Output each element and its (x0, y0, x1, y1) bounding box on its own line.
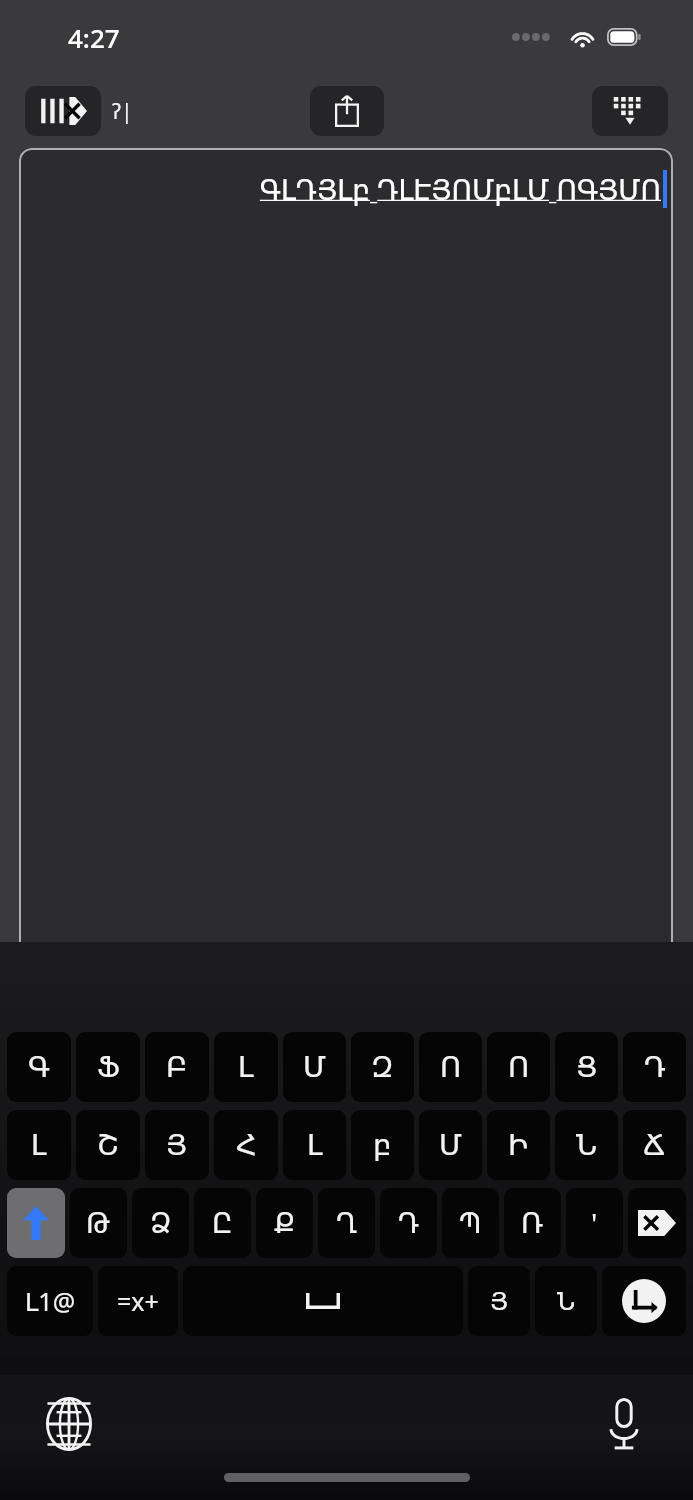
staticText: Գ (28, 1050, 50, 1084)
staticText: ' (591, 1204, 598, 1242)
staticText: Զ (371, 1050, 394, 1084)
staticText: =x+ (117, 1284, 159, 1318)
button[interactable]: Թ (70, 1188, 127, 1258)
button[interactable]: Ձ (132, 1188, 189, 1258)
button[interactable]: Shift (7, 1188, 65, 1258)
button[interactable]: Զ (351, 1032, 414, 1102)
staticText: Ն (576, 1128, 598, 1162)
staticText: ʔ| (112, 97, 133, 126)
button[interactable]: Հ (214, 1110, 278, 1180)
button[interactable]: Շ (76, 1110, 140, 1180)
button[interactable]: Ֆ (76, 1032, 140, 1102)
button[interactable]: Բ (145, 1032, 209, 1102)
staticText: Լ (238, 1050, 254, 1084)
button[interactable]: Դ (623, 1032, 686, 1102)
button[interactable]: Hide keyboard (592, 86, 668, 136)
staticText: Բ (166, 1050, 188, 1084)
button[interactable]: Ն (555, 1110, 618, 1180)
button[interactable]: Backspace (628, 1188, 686, 1258)
staticText: Ն (557, 1287, 576, 1316)
staticText: Մ (303, 1050, 326, 1084)
button[interactable]: Ի (487, 1110, 550, 1180)
button[interactable]: =x+ (98, 1266, 178, 1336)
button[interactable]: բ (351, 1110, 414, 1180)
button[interactable]: Լ1@ (7, 1266, 93, 1336)
button[interactable]: Մ (283, 1032, 346, 1102)
staticText: Լ1@ (25, 1284, 76, 1318)
staticText: Հ (236, 1128, 257, 1162)
button[interactable]: Ն (535, 1266, 597, 1336)
button[interactable]: Լ (214, 1032, 278, 1102)
staticText: Թ (86, 1207, 111, 1240)
button[interactable]: Ռ (504, 1188, 561, 1258)
staticText: Ձ (150, 1207, 172, 1240)
button[interactable]: Ո (419, 1032, 482, 1102)
button[interactable]: Ղ (318, 1188, 375, 1258)
button[interactable]: Ք (256, 1188, 313, 1258)
staticText: Մ (439, 1128, 462, 1162)
button[interactable]: Գ (7, 1032, 71, 1102)
button[interactable]: Մ (419, 1110, 482, 1180)
staticText: Յ (490, 1287, 509, 1316)
staticText: Լ (307, 1128, 323, 1162)
staticText: Շ (97, 1128, 119, 1162)
button[interactable]: Ց (555, 1032, 618, 1102)
button[interactable]: Ո (487, 1032, 550, 1102)
button[interactable]: Clear text (25, 86, 101, 136)
staticText: Ը (212, 1207, 233, 1240)
button[interactable]: Յ (468, 1266, 530, 1336)
staticText: Դ (644, 1050, 666, 1084)
staticText: Ռ (521, 1207, 544, 1240)
staticText: Ց (576, 1050, 598, 1084)
staticText: բ (373, 1128, 392, 1162)
button[interactable]: Voice input (591, 1391, 657, 1457)
staticText: Ո (508, 1050, 530, 1084)
staticText: Ի (508, 1128, 529, 1162)
button[interactable]: Ը (194, 1188, 251, 1258)
staticText: Ղ (336, 1207, 358, 1240)
button[interactable]: Պ (442, 1188, 499, 1258)
button[interactable]: Յ (145, 1110, 209, 1180)
staticText: Ֆ (97, 1050, 120, 1084)
button[interactable]: Լ (7, 1110, 71, 1180)
staticText: Յ (166, 1128, 188, 1162)
button[interactable]: ' (566, 1188, 623, 1258)
staticText: Ճ (643, 1128, 666, 1162)
button[interactable]: Ճ (623, 1110, 686, 1180)
staticText: Դ (398, 1207, 420, 1240)
staticText: Ո (440, 1050, 462, 1084)
button[interactable]: Change language (36, 1391, 102, 1457)
staticText: 4:27 (68, 20, 120, 55)
button[interactable]: Լ (283, 1110, 346, 1180)
staticText: Լ (31, 1128, 47, 1162)
button[interactable]: Enter (602, 1266, 686, 1336)
button[interactable]: Share (310, 86, 384, 136)
button[interactable]: Space (183, 1266, 463, 1336)
staticText: Պ (459, 1207, 482, 1240)
staticText: Ք (274, 1207, 296, 1240)
staticText: ԳԼԴՅԼբ ԴԼԷՅՈՄբԼՄ ՈԳՅՄՈ (259, 170, 661, 208)
button[interactable]: Դ (380, 1188, 437, 1258)
